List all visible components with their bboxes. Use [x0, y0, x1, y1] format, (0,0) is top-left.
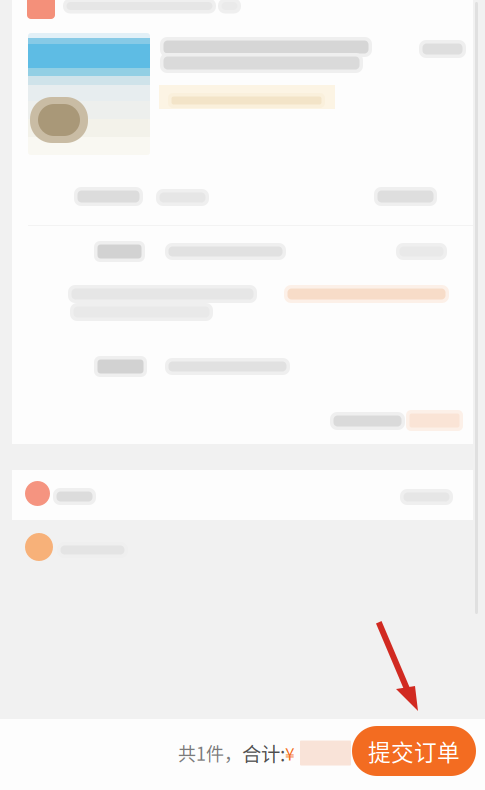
staticText: 提交订单 — [368, 735, 460, 767]
button[interactable]: 优惠详情 — [12, 274, 473, 340]
button[interactable]: 发票 — [12, 340, 473, 388]
staticText: 合计: — [242, 739, 285, 767]
button[interactable]: 提交订单 — [352, 726, 476, 776]
staticText: 共1件， — [178, 740, 242, 766]
staticText: ¥ — [285, 740, 295, 766]
button[interactable]: 天猫超市 — [27, 0, 241, 19]
button[interactable]: 支付方式 — [12, 470, 473, 520]
button[interactable]: 优惠券 — [12, 226, 473, 274]
button[interactable]: 配送方式 — [12, 170, 473, 225]
